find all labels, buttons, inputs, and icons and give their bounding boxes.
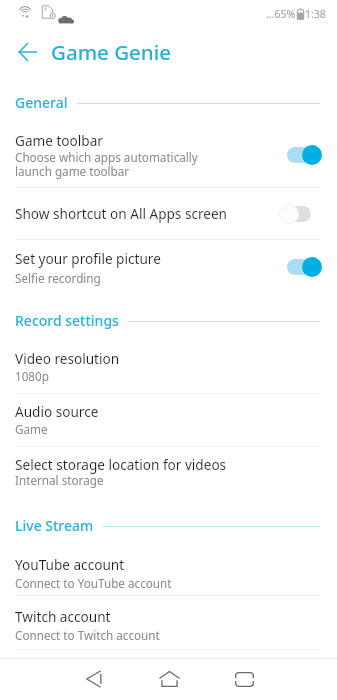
staticText: Game (15, 421, 48, 437)
button[interactable]: Twitch account (0, 596, 337, 649)
button[interactable]: Toggle on (279, 145, 322, 165)
staticText: Live Stream (15, 516, 94, 535)
button[interactable]: Toggle off (279, 204, 322, 224)
button[interactable]: Toggle on (279, 257, 322, 277)
staticText: 1:38 (305, 7, 326, 21)
button[interactable]: Audio source (0, 394, 337, 446)
staticText: General (15, 93, 68, 112)
staticText: Show shortcut on All Apps screen (15, 204, 228, 223)
staticText: Video resolution (15, 349, 120, 368)
staticText: Twitch account (15, 607, 111, 626)
button[interactable]: YouTube account (0, 546, 337, 595)
button[interactable]: Set your profile picture (0, 240, 337, 293)
staticText: Connect to YouTube account (15, 575, 172, 591)
staticText: Game toolbar (15, 131, 103, 150)
staticText: YouTube account (15, 555, 125, 574)
staticText: Game Genie (51, 38, 171, 66)
staticText: Set your profile picture (15, 249, 161, 268)
staticText: Audio source (15, 402, 99, 421)
staticText: Select storage location for videos (15, 455, 227, 474)
button[interactable]: Game toolbar (0, 122, 337, 187)
button[interactable]: Select storage location for videos (0, 447, 337, 499)
button[interactable]: Video resolution (0, 340, 337, 393)
button[interactable]: Show shortcut on All Apps screen (0, 188, 337, 239)
button[interactable]: Back (74, 659, 114, 699)
staticText: Selfie recording (15, 270, 101, 286)
button[interactable]: Back (9, 36, 43, 70)
staticText: Internal storage (15, 472, 104, 488)
button[interactable]: Recents (224, 659, 264, 699)
staticText: 1080p (15, 368, 49, 384)
staticText: ...65% (266, 7, 296, 21)
staticText: Connect to Twitch account (15, 627, 160, 643)
staticText: Record settings (15, 311, 119, 330)
staticText: Choose which apps automatically launch g… (15, 149, 198, 179)
button[interactable]: Home (149, 659, 189, 699)
